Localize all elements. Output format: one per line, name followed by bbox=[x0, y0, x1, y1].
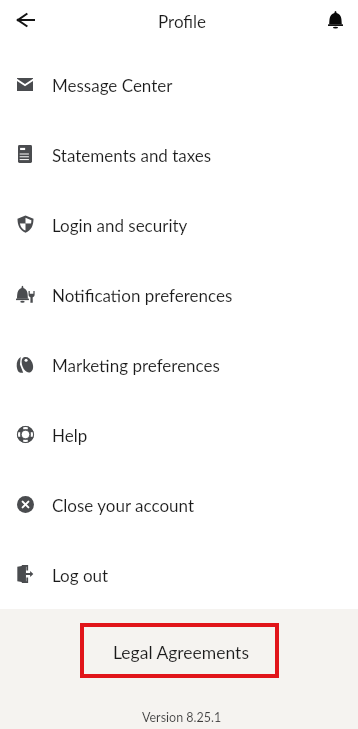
button[interactable]: Back bbox=[6, 1, 44, 39]
staticText: Close your account bbox=[52, 495, 195, 515]
button[interactable]: Log out bbox=[0, 539, 358, 609]
button[interactable]: Close your account bbox=[0, 469, 358, 539]
staticText: Notification preferences bbox=[52, 285, 233, 305]
staticText: Version 8.25.1 bbox=[142, 710, 222, 725]
button[interactable]: Notifications bbox=[316, 0, 354, 38]
button[interactable]: Message Center bbox=[0, 49, 358, 119]
staticText: Marketing preferences bbox=[52, 355, 220, 375]
staticText: Help bbox=[52, 425, 88, 445]
button[interactable]: Login and security bbox=[0, 189, 358, 259]
button[interactable]: Help bbox=[0, 399, 358, 469]
staticText: Login and security bbox=[52, 215, 188, 235]
staticText: Legal Agreements bbox=[113, 642, 249, 663]
button[interactable]: Statements and taxes bbox=[0, 119, 358, 189]
button[interactable]: Legal Agreements bbox=[80, 623, 279, 678]
button[interactable]: Marketing preferences bbox=[0, 329, 358, 399]
staticText: Statements and taxes bbox=[52, 145, 212, 165]
staticText: Log out bbox=[52, 565, 109, 585]
button[interactable]: Notification preferences bbox=[0, 259, 358, 329]
staticText: Profile bbox=[158, 11, 207, 31]
staticText: Message Center bbox=[52, 75, 173, 95]
